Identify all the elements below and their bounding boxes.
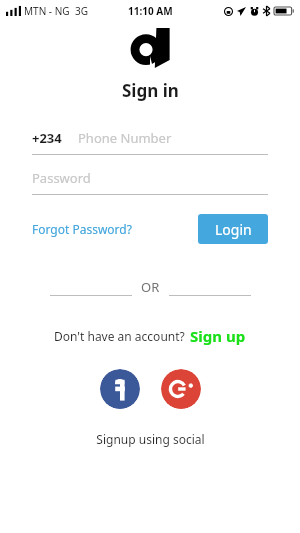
button[interactable]: Login <box>198 214 268 244</box>
staticText: Password <box>32 169 91 187</box>
button[interactable]: +234 <box>32 129 268 155</box>
staticText: Forgot Password? <box>32 221 132 237</box>
button[interactable]: Password <box>32 169 268 195</box>
staticText: Phone Number <box>78 129 172 147</box>
staticText: Sign in <box>122 79 179 102</box>
button[interactable]: Sign up with Google <box>161 369 201 409</box>
button[interactable]: Forgot Password? <box>32 217 132 241</box>
button[interactable]: Sign up <box>190 326 246 346</box>
staticText: Login <box>215 220 252 239</box>
staticText: MTN - NG <box>24 4 70 18</box>
staticText: +234 <box>32 129 62 147</box>
staticText: 3G <box>75 4 88 18</box>
staticText: OR <box>141 278 160 296</box>
button[interactable]: Sign up with Facebook <box>100 369 140 409</box>
staticText: 11:10 AM <box>128 4 173 18</box>
staticText: Sign up <box>190 326 246 346</box>
staticText: Signup using social <box>96 431 205 447</box>
staticText: Don't have an account? <box>54 328 185 344</box>
